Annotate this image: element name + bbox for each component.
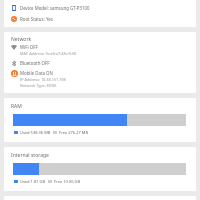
- staticText: RAM: [11, 103, 22, 110]
- staticText: Mobile Data ON: [20, 70, 53, 76]
- other: Mobile data: [11, 70, 18, 77]
- staticText: Used 1.81 GB: [20, 179, 46, 184]
- other: WiFi: [11, 45, 17, 50]
- staticText: Device Model: samsung GT-P3100: [20, 5, 90, 11]
- staticText: Network: [11, 36, 32, 43]
- staticText: MAC Address: 9c:e6:e7:48:c9:38: [20, 51, 76, 56]
- button[interactable]: RAM: [4, 98, 196, 142]
- staticText: Used 538.36 MB: [20, 130, 51, 135]
- button[interactable]: Internal storage: [4, 147, 196, 191]
- other: Device: [12, 5, 16, 11]
- other: Root status: [11, 16, 17, 22]
- staticText: Bluetooth OFF: [20, 60, 50, 66]
- staticText: IP Address: 10.38.151.198: [20, 77, 66, 82]
- button[interactable]: Device: [4, 1, 196, 14]
- button[interactable]: Bluetooth: [4, 59, 196, 67]
- button[interactable]: Root status: [4, 12, 196, 25]
- staticText: Free 276.27 MB: [59, 130, 88, 135]
- other: Bluetooth: [12, 61, 16, 66]
- staticText: Root Status: Yes: [20, 16, 53, 22]
- button[interactable]: WiFi: [4, 44, 196, 56]
- staticText: Network Type: EDGE: [20, 83, 57, 88]
- staticText: WiFi OFF: [20, 44, 38, 50]
- staticText: Internal storage: [11, 152, 49, 159]
- button[interactable]: Mobile data: [4, 70, 196, 88]
- staticText: Free 10.06 GB: [54, 179, 80, 184]
